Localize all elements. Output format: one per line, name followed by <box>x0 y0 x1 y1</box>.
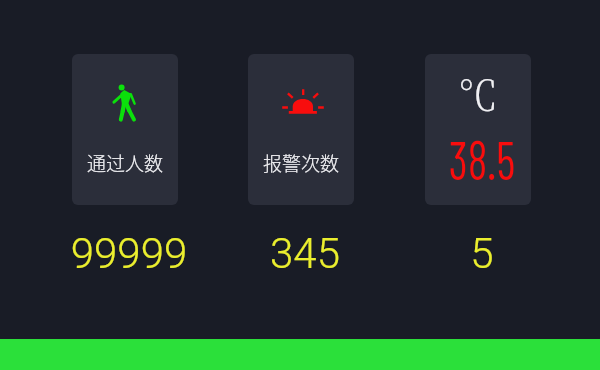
other: Pedestrian count <box>111 81 140 123</box>
button[interactable]: 345 <box>232 221 378 277</box>
staticText: 38.5 <box>436 126 528 191</box>
staticText: ℃ <box>425 64 531 121</box>
button[interactable]: 5 <box>409 221 555 277</box>
button[interactable]: 温度 38.5 摄氏度 <box>425 54 531 205</box>
staticText: 通过人数 <box>72 149 178 177</box>
staticText: 报警次数 <box>248 149 354 177</box>
button[interactable]: 报警次数 <box>248 54 354 205</box>
staticText: 345 <box>232 229 378 278</box>
staticText: 99999 <box>56 229 202 278</box>
staticText: 5 <box>409 229 555 278</box>
other: Alarm count <box>282 88 324 114</box>
button[interactable]: 99999 <box>56 221 202 277</box>
button[interactable]: 通过人数 <box>72 54 178 205</box>
